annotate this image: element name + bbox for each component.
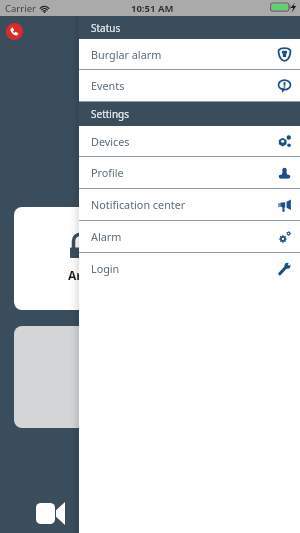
button[interactable] <box>14 326 136 428</box>
staticText: Status <box>91 21 121 35</box>
staticText: Profile <box>91 165 124 180</box>
staticText: Alarm <box>91 229 122 244</box>
staticText: Settings <box>91 107 130 121</box>
staticText: Carrier <box>5 2 36 15</box>
button[interactable]: Call <box>6 23 23 40</box>
button[interactable]: Burglar alarm <box>79 39 300 69</box>
button[interactable]: Events <box>79 70 300 101</box>
button[interactable]: Alarm <box>79 221 300 252</box>
button[interactable]: Armed <box>14 207 138 310</box>
staticText: 10:51 AM <box>131 2 174 15</box>
button[interactable]: Login <box>79 253 300 284</box>
button[interactable]: Profile <box>79 157 300 188</box>
button[interactable]: Video <box>36 502 65 525</box>
staticText: Events <box>91 78 125 93</box>
button[interactable]: Notification center <box>79 189 300 220</box>
staticText: Login <box>91 261 120 276</box>
staticText: Notification center <box>91 197 186 212</box>
button[interactable]: Devices <box>79 126 300 156</box>
staticText: Burglar alarm <box>91 47 162 62</box>
staticText: Armed <box>68 267 109 283</box>
staticText: Devices <box>91 134 130 149</box>
